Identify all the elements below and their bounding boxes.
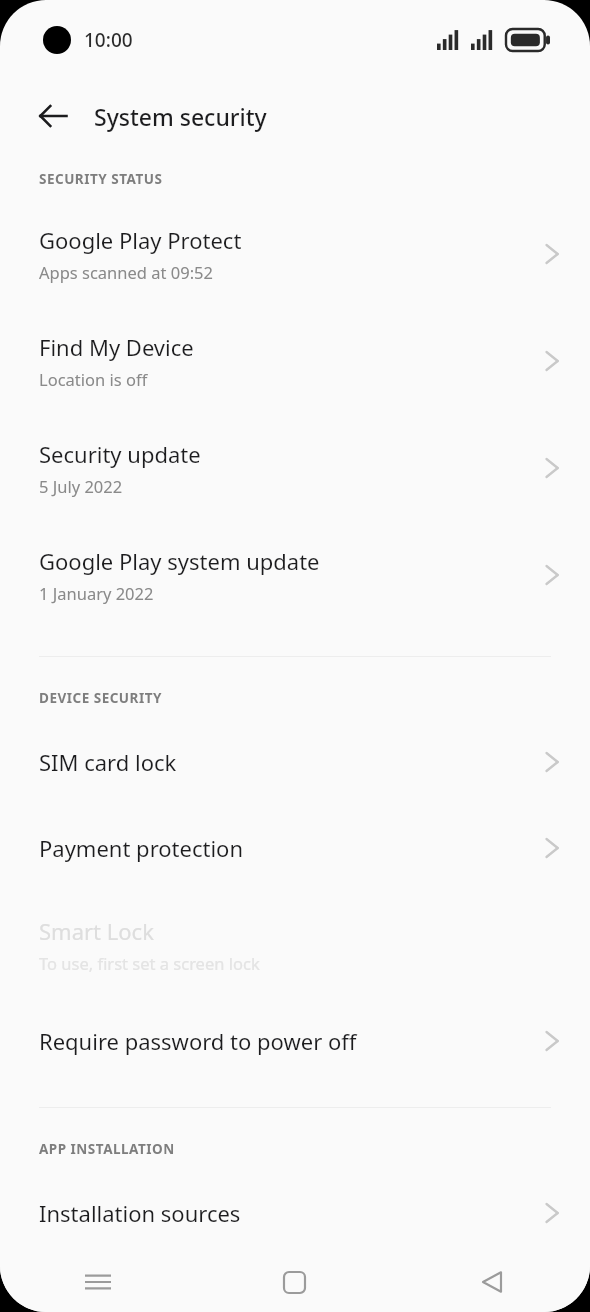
button[interactable]: Home bbox=[196, 1252, 393, 1312]
staticText: Apps scanned at 09:52 bbox=[39, 261, 213, 283]
button[interactable]: Google Play system update bbox=[0, 521, 590, 628]
staticText: DEVICE SECURITY bbox=[39, 689, 162, 707]
staticText: 10:00 bbox=[84, 27, 133, 53]
staticText: Google Play system update bbox=[39, 546, 320, 576]
button[interactable]: Back bbox=[24, 87, 82, 145]
staticText: 1 January 2022 bbox=[39, 582, 154, 604]
staticText: Find My Device bbox=[39, 332, 194, 362]
button[interactable]: Require password to power off bbox=[0, 998, 590, 1084]
staticText: System security bbox=[94, 101, 267, 132]
button[interactable]: Recent apps bbox=[0, 1252, 196, 1312]
staticText: SIM card lock bbox=[39, 747, 542, 777]
button[interactable]: SIM card lock bbox=[0, 719, 590, 805]
button[interactable]: Smart Lock bbox=[0, 891, 590, 998]
staticText: 5 July 2022 bbox=[39, 475, 123, 497]
staticText: SECURITY STATUS bbox=[39, 170, 163, 188]
staticText: Location is off bbox=[39, 368, 148, 390]
button[interactable]: Back bbox=[393, 1252, 590, 1312]
button[interactable]: Security update bbox=[0, 414, 590, 521]
staticText: To use, first set a screen lock bbox=[39, 952, 260, 974]
staticText: APP INSTALLATION bbox=[39, 1140, 175, 1158]
staticText: Google Play Protect bbox=[39, 225, 242, 255]
staticText: Installation sources bbox=[39, 1198, 542, 1228]
button[interactable]: Payment protection bbox=[0, 805, 590, 891]
button[interactable]: Find My Device bbox=[0, 307, 590, 414]
staticText: Smart Lock bbox=[39, 916, 154, 946]
button[interactable]: Google Play Protect bbox=[0, 200, 590, 307]
staticText: Payment protection bbox=[39, 833, 542, 863]
button[interactable]: Installation sources bbox=[0, 1170, 590, 1256]
staticText: Security update bbox=[39, 439, 201, 469]
staticText: Require password to power off bbox=[39, 1026, 542, 1056]
